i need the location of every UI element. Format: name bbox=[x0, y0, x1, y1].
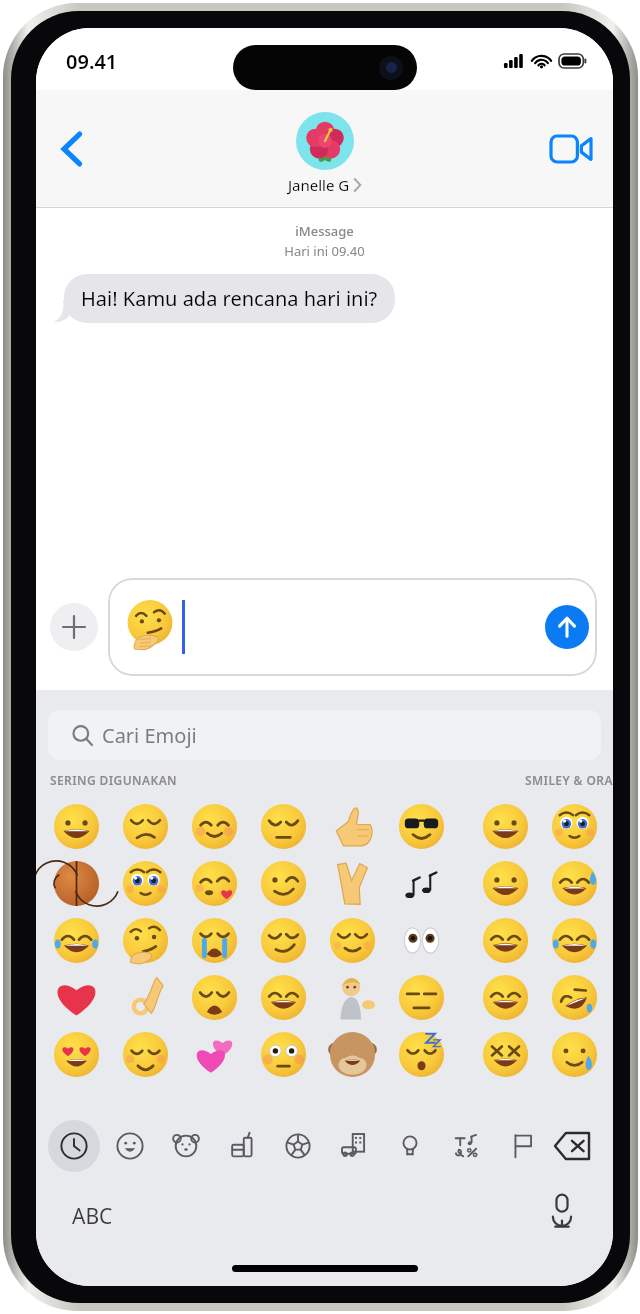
button[interactable]: Emoji bbox=[259, 916, 308, 965]
button[interactable]: Emoji bbox=[550, 973, 599, 1022]
button[interactable]: Emoji bbox=[121, 973, 170, 1022]
button[interactable]: Dictate bbox=[539, 1188, 585, 1234]
button[interactable]: Emoji bbox=[328, 973, 377, 1022]
button[interactable]: Send bbox=[108, 578, 597, 676]
button[interactable]: Emoji bbox=[190, 973, 239, 1022]
button[interactable]: Emoji bbox=[190, 916, 239, 965]
button[interactable]: Emoji bbox=[550, 916, 599, 965]
button[interactable]: Emoji bbox=[328, 859, 377, 908]
staticText: SMILEY & ORA bbox=[525, 772, 613, 788]
button[interactable]: Back bbox=[44, 121, 100, 177]
button[interactable]: Emoji bbox=[397, 916, 446, 965]
button[interactable]: Activity bbox=[272, 1120, 324, 1172]
staticText: Janelle G bbox=[288, 175, 350, 195]
button[interactable]: Emoji bbox=[481, 916, 530, 965]
staticText: SERING DIGUNAKAN bbox=[50, 772, 178, 788]
staticText: ABC bbox=[72, 1202, 113, 1231]
button[interactable]: Emoji bbox=[481, 802, 530, 851]
button[interactable]: Emoji bbox=[259, 802, 308, 851]
button[interactable]: Emoji bbox=[397, 1030, 446, 1079]
button[interactable]: Recent bbox=[48, 1120, 100, 1172]
button[interactable]: Travel bbox=[328, 1120, 380, 1172]
button[interactable]: Food bbox=[216, 1120, 268, 1172]
button[interactable]: Emoji bbox=[550, 859, 599, 908]
button[interactable]: Emoji bbox=[52, 1030, 101, 1079]
button[interactable]: Emoji bbox=[121, 916, 170, 965]
button[interactable]: Emoji bbox=[52, 916, 101, 965]
button[interactable]: Hai! Kamu ada rencana hari ini? bbox=[64, 274, 395, 323]
button[interactable]: Emoji bbox=[190, 802, 239, 851]
button[interactable]: Animals bbox=[160, 1120, 212, 1172]
button[interactable]: Emoji bbox=[121, 1030, 170, 1079]
button[interactable]: Emoji bbox=[481, 859, 530, 908]
button[interactable]: Flags bbox=[496, 1120, 548, 1172]
button[interactable]: Add attachment bbox=[50, 603, 98, 651]
staticText: Hari ini 09.40 bbox=[36, 242, 613, 260]
button[interactable]: Send bbox=[545, 605, 589, 649]
button[interactable]: Emoji bbox=[52, 859, 101, 908]
button[interactable]: Emoji bbox=[121, 802, 170, 851]
button[interactable]: Emoji bbox=[259, 859, 308, 908]
button[interactable]: Emoji bbox=[397, 859, 446, 908]
staticText: iMessage bbox=[36, 222, 613, 240]
button[interactable]: Emoji bbox=[481, 1030, 530, 1079]
button[interactable]: Emoji bbox=[190, 859, 239, 908]
button[interactable]: Emoji bbox=[397, 802, 446, 851]
staticText: Hai! Kamu ada rencana hari ini? bbox=[81, 285, 378, 312]
button[interactable]: Emoji bbox=[397, 973, 446, 1022]
button[interactable]: Emoji bbox=[328, 916, 377, 965]
button[interactable]: Emoji bbox=[52, 802, 101, 851]
button[interactable]: Emoji bbox=[259, 1030, 308, 1079]
button[interactable]: Symbols bbox=[440, 1120, 492, 1172]
button[interactable]: Emoji bbox=[52, 973, 101, 1022]
button[interactable]: Janelle G bbox=[288, 112, 361, 195]
button[interactable]: Emoji bbox=[328, 802, 377, 851]
button[interactable]: FaceTime video call bbox=[543, 121, 599, 177]
button[interactable]: Delete bbox=[547, 1121, 597, 1171]
button[interactable]: Cari Emoji bbox=[48, 710, 601, 760]
button[interactable]: Emoji bbox=[481, 973, 530, 1022]
staticText: Cari Emoji bbox=[102, 722, 197, 749]
button[interactable]: Emoji bbox=[550, 802, 599, 851]
staticText: 09.41 bbox=[66, 48, 118, 75]
button[interactable]: Emoji bbox=[121, 859, 170, 908]
button[interactable]: Emoji bbox=[190, 1030, 239, 1079]
button[interactable]: Emoji bbox=[259, 973, 308, 1022]
button[interactable]: ABC bbox=[66, 1196, 119, 1237]
button[interactable]: Emoji bbox=[328, 1030, 377, 1079]
button[interactable]: Emoji bbox=[550, 1030, 599, 1079]
button[interactable]: Smileys bbox=[104, 1120, 156, 1172]
button[interactable]: Objects bbox=[384, 1120, 436, 1172]
